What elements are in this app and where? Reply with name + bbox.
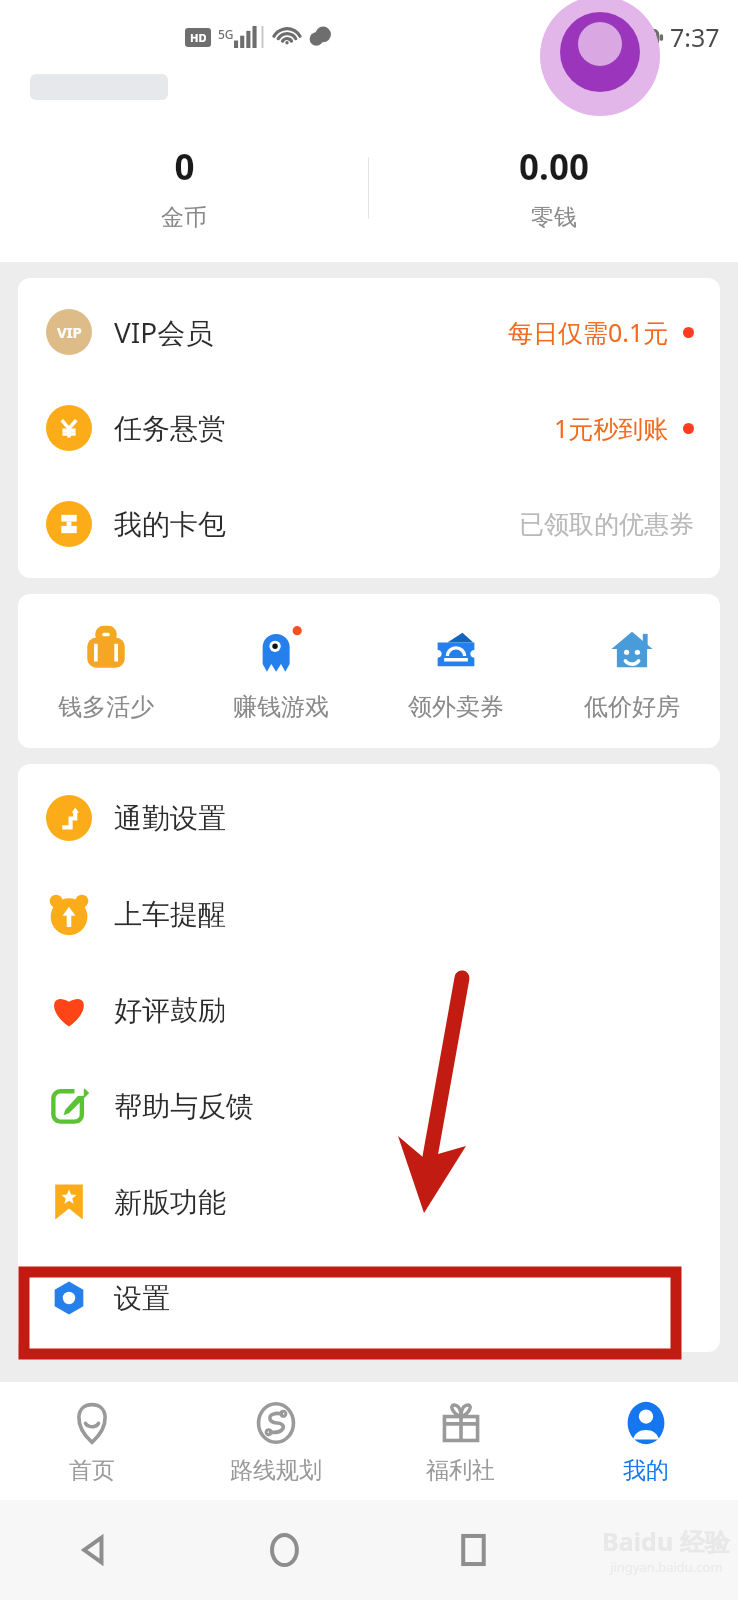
staticText: 新版功能 (114, 1185, 226, 1220)
staticText: jingyan.baidu.com (610, 1558, 723, 1576)
button[interactable]: 赚钱游戏 (193, 616, 368, 726)
button[interactable]: 首页 (0, 1382, 184, 1500)
staticText: 每日仅需0.1元 (508, 315, 669, 349)
staticText: Baidu 经验 (602, 1524, 730, 1558)
button[interactable]: VIP (18, 284, 720, 380)
staticText: 0 (174, 143, 195, 191)
button[interactable]: 0 (0, 139, 368, 236)
staticText: 上车提醒 (114, 897, 226, 932)
staticText: 福利社 (426, 1456, 495, 1485)
staticText: 金币 (161, 203, 207, 232)
button[interactable]: 好评鼓励 (18, 962, 720, 1058)
staticText: 我的 (623, 1456, 669, 1485)
staticText: 领外卖券 (408, 692, 504, 722)
button[interactable]: 福利社 (368, 1382, 553, 1500)
staticText: 5G (218, 26, 234, 42)
staticText: VIP (57, 322, 82, 342)
staticText: HD (190, 30, 207, 45)
button[interactable]: 新版功能 (18, 1154, 720, 1250)
staticText: 赚钱游戏 (233, 692, 329, 722)
staticText: 首页 (69, 1456, 115, 1485)
staticText: 路线规划 (230, 1456, 322, 1485)
button[interactable]: Back (68, 1523, 122, 1577)
staticText: 已领取的优惠券 (519, 509, 694, 540)
staticText: 我的卡包 (114, 507, 226, 542)
staticText: 通勤设置 (114, 801, 226, 836)
staticText: 7:37 (670, 20, 720, 54)
button[interactable]: 领外卖券 (368, 616, 544, 726)
staticText: 低价好房 (584, 692, 680, 722)
button[interactable]: 任务悬赏 (18, 380, 720, 476)
staticText: 帮助与反馈 (114, 1089, 254, 1124)
staticText: 设置 (114, 1281, 170, 1316)
staticText: 零钱 (531, 203, 577, 232)
button[interactable]: 通勤设置 (18, 770, 720, 866)
staticText: 钱多活少 (58, 692, 154, 722)
button[interactable]: 0.00 (369, 139, 738, 236)
staticText: VIP会员 (114, 313, 214, 351)
button[interactable]: 低价好房 (544, 616, 720, 726)
staticText: 0.00 (519, 143, 589, 191)
button[interactable]: Recents (447, 1523, 501, 1577)
staticText: 任务悬赏 (114, 411, 226, 446)
staticText: 1元秒到账 (554, 411, 669, 445)
button[interactable]: 我的 (553, 1382, 738, 1500)
button[interactable]: 路线规划 (184, 1382, 368, 1500)
button[interactable]: 帮助与反馈 (18, 1058, 720, 1154)
button[interactable]: Home (258, 1523, 312, 1577)
button[interactable]: 我的卡包 (18, 476, 720, 572)
staticText: 好评鼓励 (114, 993, 226, 1028)
button[interactable]: 钱多活少 (18, 616, 193, 726)
button[interactable]: 上车提醒 (18, 866, 720, 962)
button[interactable]: 设置 (18, 1250, 720, 1346)
